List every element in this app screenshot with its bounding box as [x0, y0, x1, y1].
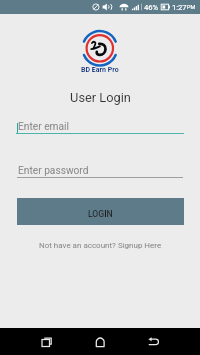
- staticText: Enter email: [18, 121, 69, 133]
- staticText: LOGIN: [88, 209, 113, 219]
- button[interactable]: Home: [80, 328, 120, 355]
- staticText: BD Earn Pro: [81, 66, 119, 74]
- button[interactable]: Not have an account? Signup Here: [39, 241, 162, 250]
- staticText: 46%: [144, 3, 159, 12]
- staticText: PM: [187, 4, 196, 11]
- staticText: Enter password: [18, 165, 89, 177]
- button[interactable]: Back: [133, 328, 173, 355]
- staticText: 1:27: [172, 3, 187, 12]
- staticText: User Login: [70, 90, 131, 105]
- button[interactable]: Recent apps: [20, 328, 80, 355]
- staticText: Not have an account? Signup Here: [39, 241, 162, 250]
- button[interactable]: LOGIN: [17, 198, 184, 225]
